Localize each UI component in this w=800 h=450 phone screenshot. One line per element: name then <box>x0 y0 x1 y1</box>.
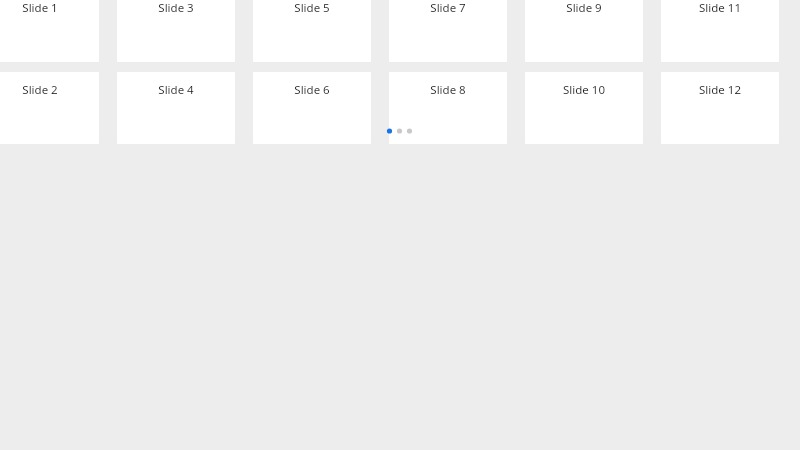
staticText: Slide 12 <box>661 82 779 98</box>
staticText: Slide 9 <box>525 0 643 16</box>
staticText: Slide 2 <box>0 82 99 98</box>
button[interactable]: Slide 5 <box>253 0 371 62</box>
button[interactable]: Slide 10 <box>525 72 643 144</box>
button[interactable]: Slide 9 <box>525 0 643 62</box>
button[interactable]: Slide 4 <box>117 72 235 144</box>
button[interactable]: Carousel page indicator <box>383 124 417 138</box>
staticText: Slide 5 <box>253 0 371 16</box>
staticText: Slide 11 <box>661 0 779 16</box>
button[interactable]: Slide 1 <box>0 0 99 62</box>
staticText: Slide 8 <box>389 82 507 98</box>
button[interactable]: Slide 11 <box>661 0 779 62</box>
staticText: Slide 7 <box>389 0 507 16</box>
staticText: Slide 6 <box>253 82 371 98</box>
staticText: Slide 4 <box>117 82 235 98</box>
staticText: Slide 1 <box>0 0 99 16</box>
staticText: Slide 3 <box>117 0 235 16</box>
button[interactable]: Slide 8 <box>389 72 507 144</box>
staticText: Slide 10 <box>525 82 643 98</box>
button[interactable]: Slide 12 <box>661 72 779 144</box>
button[interactable]: Slide 2 <box>0 72 99 144</box>
button[interactable]: Slide 3 <box>117 0 235 62</box>
button[interactable]: Slide 6 <box>253 72 371 144</box>
button[interactable]: Slide 7 <box>389 0 507 62</box>
